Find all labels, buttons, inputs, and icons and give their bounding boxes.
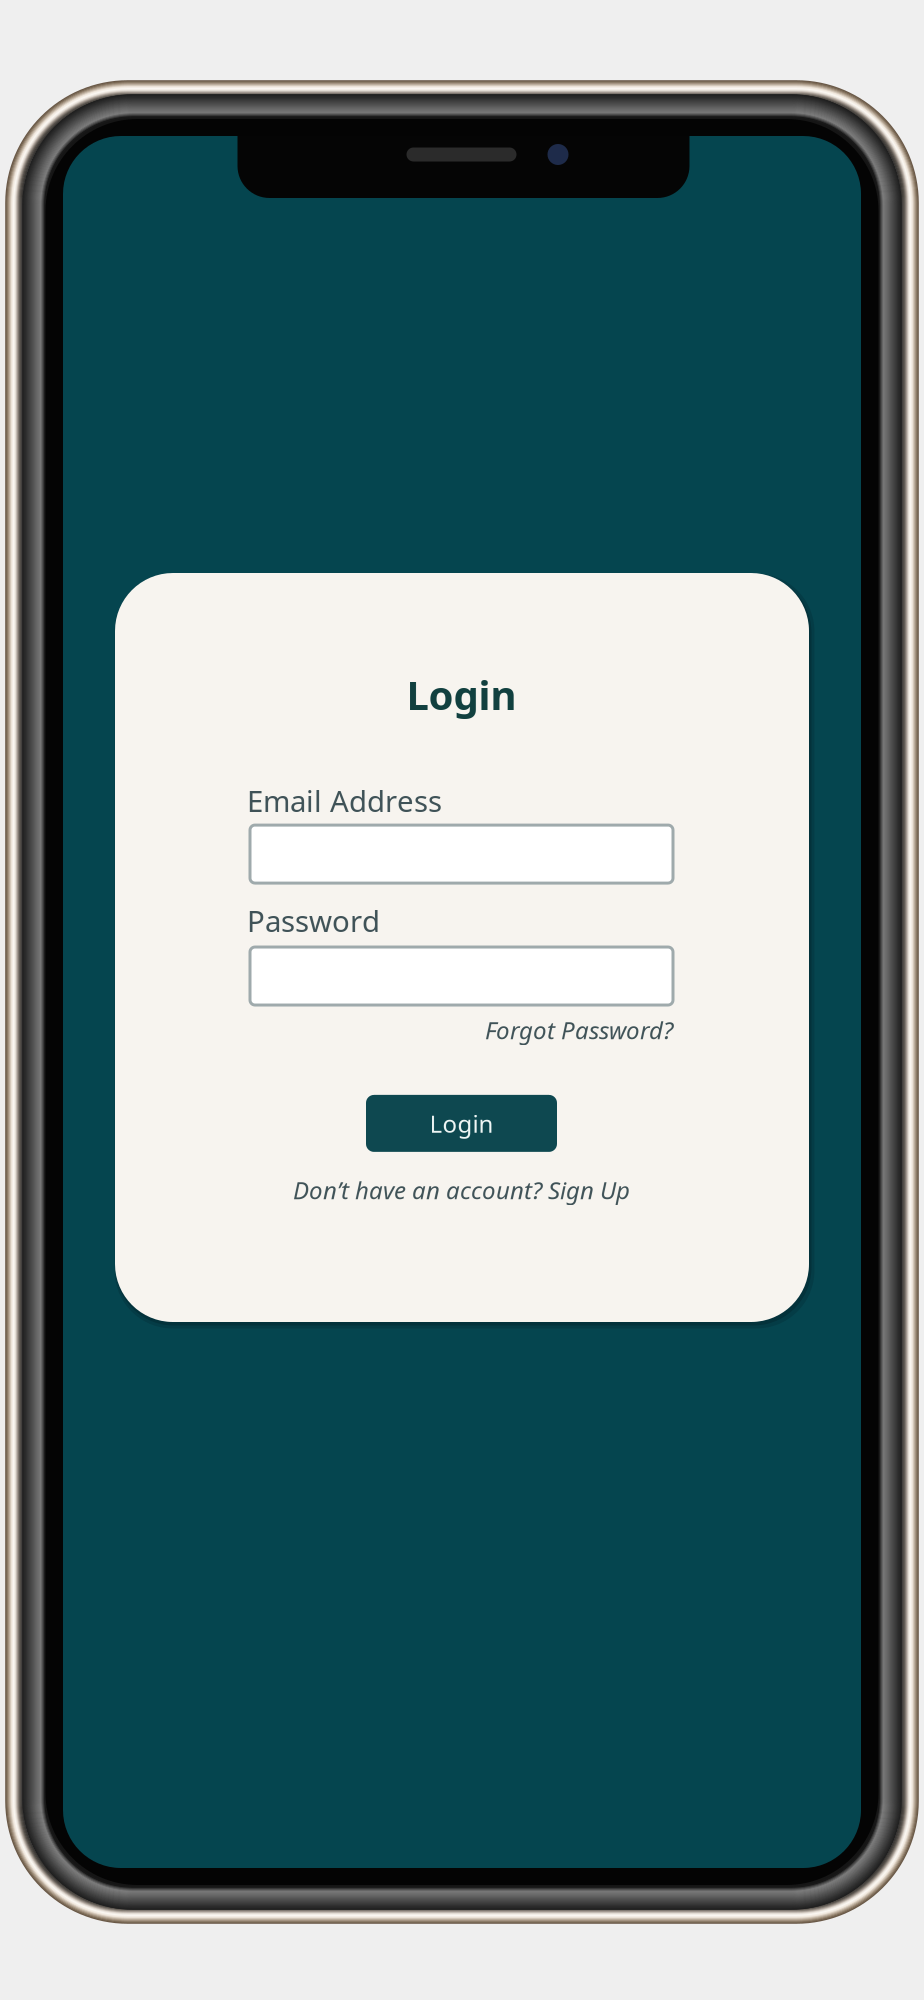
button[interactable]: Login xyxy=(366,1095,557,1152)
staticText: Forgot Password? xyxy=(485,1014,673,1046)
staticText: Password xyxy=(247,901,380,940)
button[interactable]: Password xyxy=(250,947,673,1005)
staticText: Email Address xyxy=(247,781,442,820)
staticText: Login xyxy=(429,1107,493,1139)
button[interactable]: Forgot Password? xyxy=(250,1014,673,1046)
staticText: Don’t have an account? Sign Up xyxy=(293,1174,630,1206)
button[interactable]: Email Address xyxy=(250,825,673,883)
staticText: Login xyxy=(406,668,516,721)
button[interactable]: Don’t have an account? Sign Up xyxy=(230,1174,693,1206)
